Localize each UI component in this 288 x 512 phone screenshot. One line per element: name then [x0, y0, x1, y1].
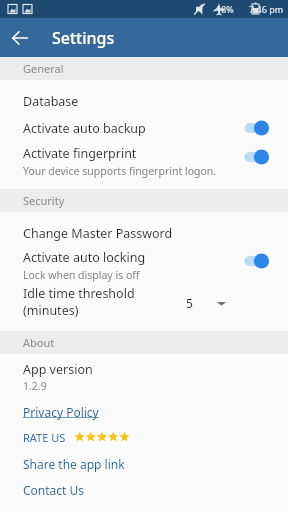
- button[interactable]: Change Master Password: [0, 221, 288, 246]
- staticText: Idle time threshold (minutes): [23, 285, 186, 319]
- staticText: 5: [186, 295, 193, 311]
- staticText: About: [23, 335, 55, 350]
- staticText: Lock when display is off: [23, 268, 140, 282]
- staticText: Database: [23, 93, 79, 110]
- staticText: 18%: [216, 3, 234, 15]
- staticText: Privacy Policy: [23, 404, 99, 420]
- button[interactable]: RATE US: [0, 426, 288, 448]
- button[interactable]: App version: [0, 360, 288, 395]
- button[interactable]: Activate fingerprint: [0, 142, 288, 181]
- staticText: RATE US: [23, 430, 66, 445]
- staticText: 1.2.9: [23, 379, 47, 393]
- button[interactable]: Privacy Policy: [0, 402, 288, 422]
- button[interactable]: Activate auto locking: [0, 246, 288, 285]
- button[interactable]: Idle time threshold (minutes): [0, 285, 288, 321]
- staticText: 7:46 pm: [249, 3, 284, 15]
- staticText: General: [23, 61, 64, 76]
- staticText: Security: [23, 193, 65, 208]
- staticText: Activate auto locking: [23, 249, 146, 266]
- staticText: Activate fingerprint: [23, 145, 137, 162]
- staticText: App version: [23, 361, 93, 378]
- staticText: Share the app link: [23, 456, 125, 472]
- button[interactable]: Database: [0, 89, 288, 114]
- button[interactable]: Activate auto backup: [0, 114, 288, 142]
- staticText: Your device supports fingerprint logon.: [23, 164, 217, 178]
- staticText: Activate auto backup: [23, 120, 146, 137]
- button[interactable]: Back: [0, 18, 40, 57]
- button[interactable]: Contact Us: [0, 480, 288, 500]
- staticText: Settings: [52, 27, 115, 49]
- staticText: Change Master Password: [23, 225, 173, 242]
- button[interactable]: Share the app link: [0, 454, 288, 474]
- staticText: Contact Us: [23, 482, 85, 498]
